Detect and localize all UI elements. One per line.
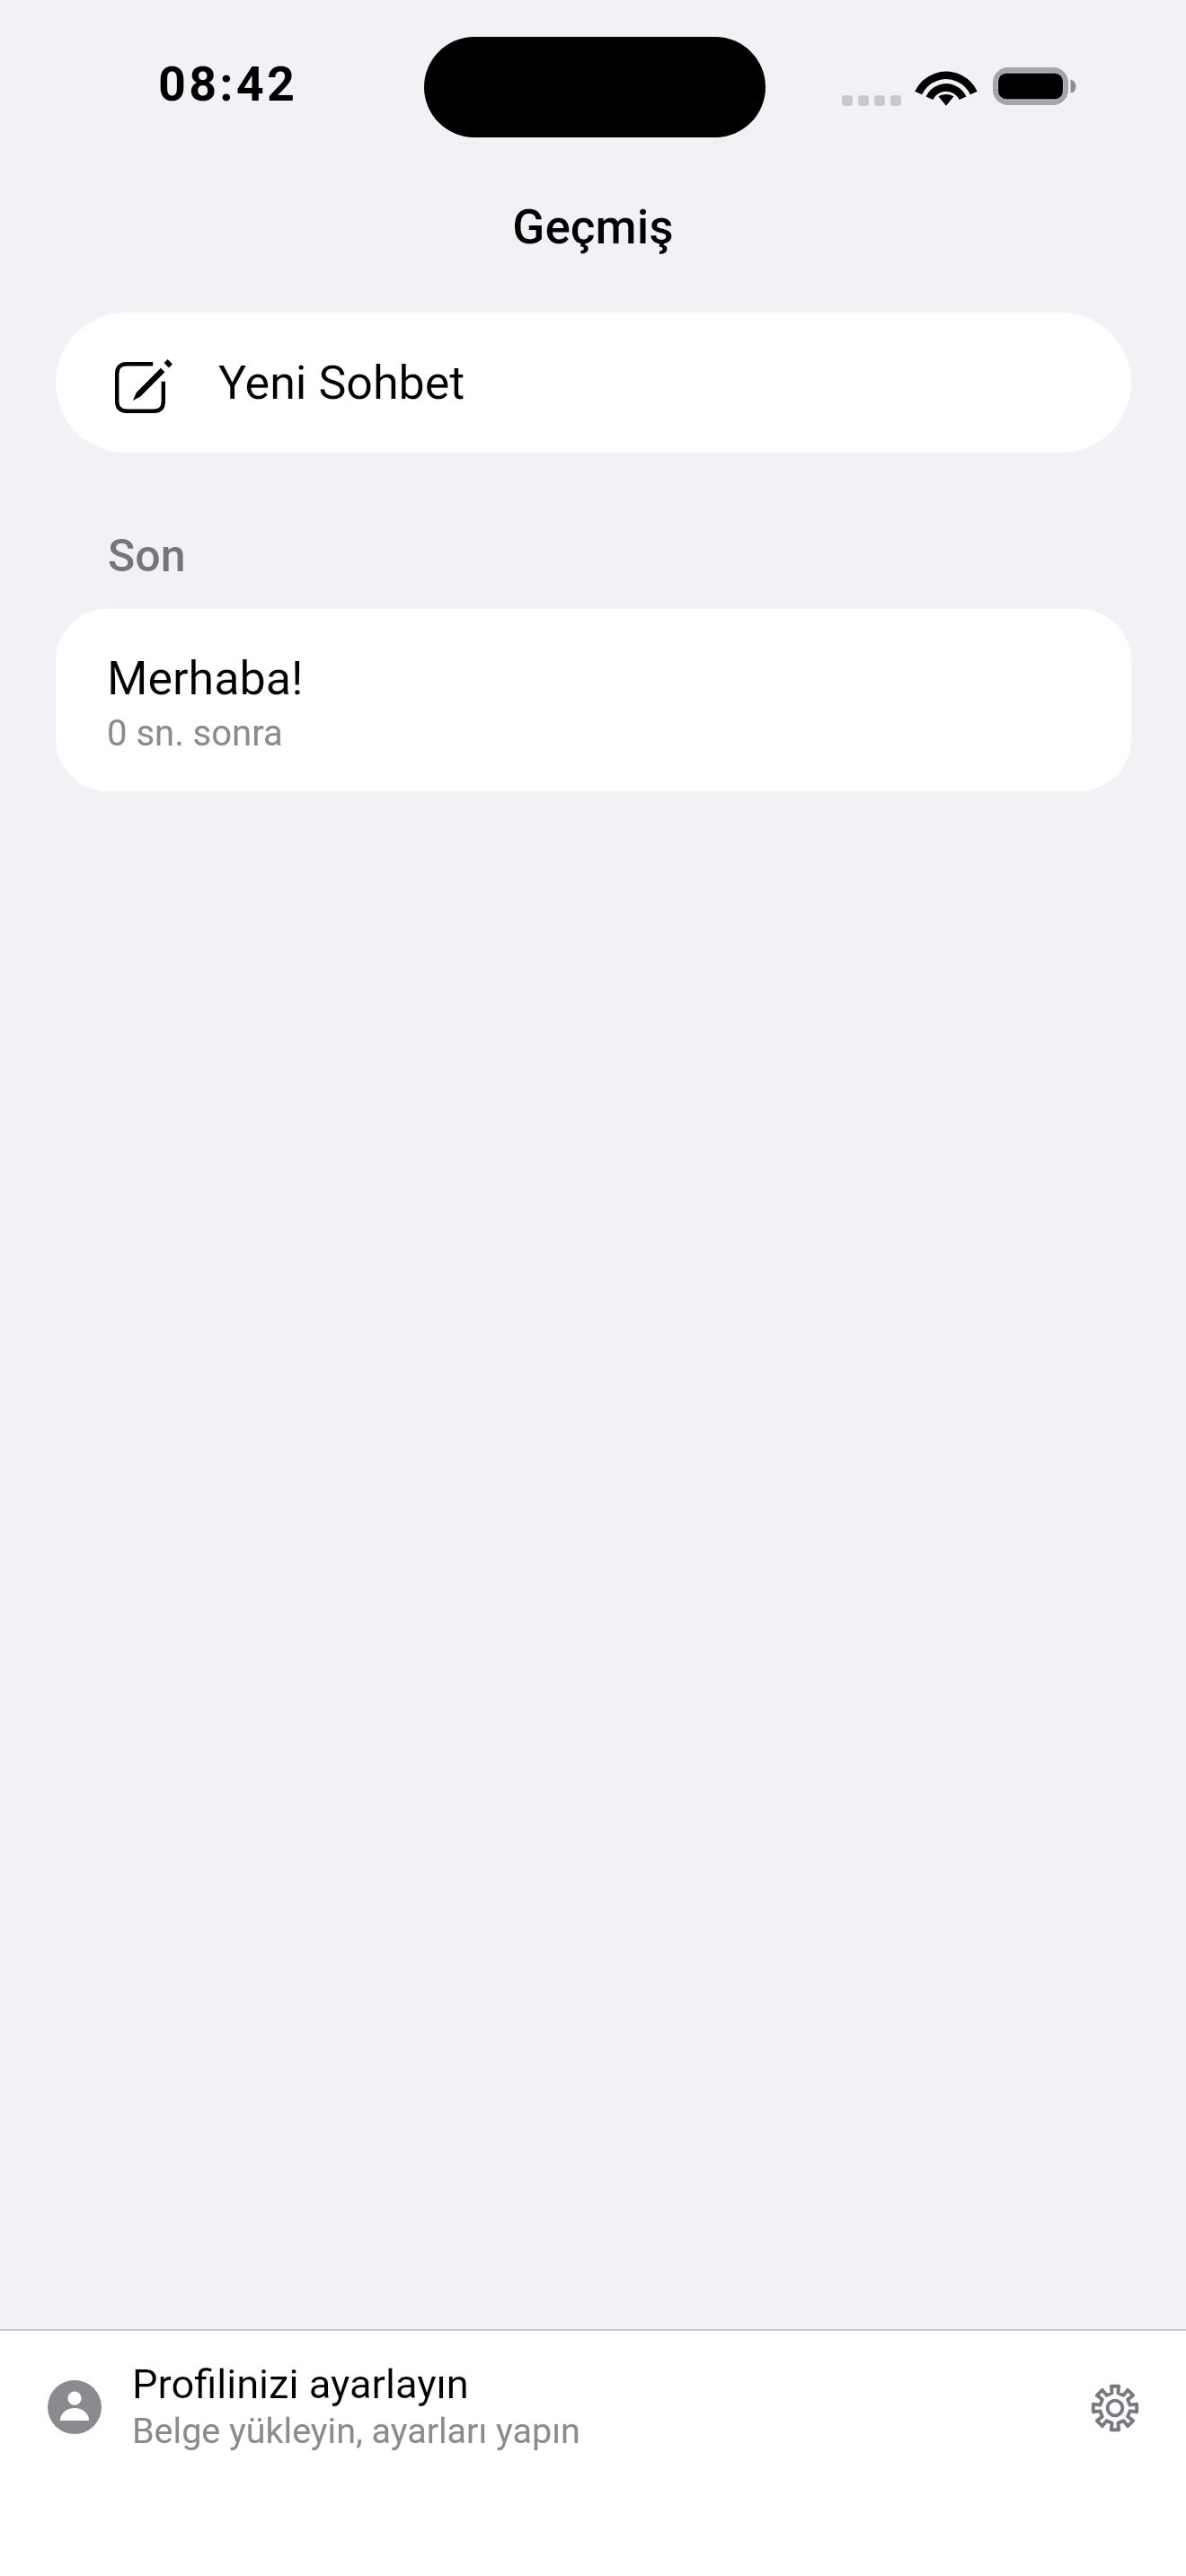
staticText: 08:42 — [158, 56, 298, 112]
staticText: Son — [108, 530, 186, 583]
staticText: Geçmiş — [512, 199, 674, 255]
button[interactable]: Settings — [1076, 2369, 1154, 2447]
staticText: Profilinizi ayarlayın — [132, 2360, 469, 2408]
staticText: Belge yükleyin, ayarları yapın — [132, 2410, 580, 2451]
staticText: Yeni Sohbet — [218, 356, 465, 410]
button[interactable]: Profilinizi ayarlayın — [0, 2331, 1186, 2451]
staticText: Merhaba! — [107, 651, 304, 706]
button[interactable]: Merhaba! — [56, 609, 1131, 791]
staticText: 0 sn. sonra — [107, 712, 283, 754]
button[interactable]: Yeni Sohbet — [56, 313, 1131, 453]
